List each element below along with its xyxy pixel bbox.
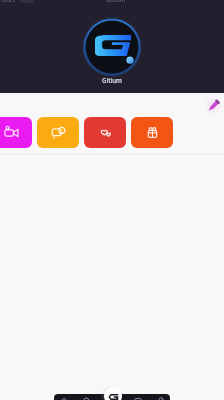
staticText: Gitium — [106, 0, 126, 4]
button[interactable]: Messages — [132, 395, 143, 400]
staticText: Gitium — [102, 76, 122, 84]
button[interactable]: Gitium home — [104, 387, 122, 400]
staticText: 10:21 — [0, 0, 16, 4]
button[interactable]: Category 4 — [131, 117, 173, 148]
button[interactable]: Category 1 — [0, 117, 32, 148]
button[interactable]: Category 2 — [37, 117, 79, 148]
button[interactable]: Category 3 — [84, 117, 126, 148]
button[interactable]: Home — [58, 395, 69, 400]
button[interactable]: Edit — [205, 97, 222, 114]
button[interactable]: Explore — [81, 395, 92, 400]
button[interactable]: Profile — [155, 395, 166, 400]
